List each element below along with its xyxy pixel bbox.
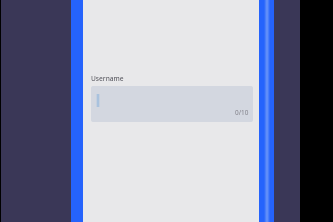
staticText: Username — [91, 74, 124, 83]
button[interactable]: Resize preview from right — [259, 0, 274, 222]
button[interactable]: Username text field — [91, 86, 253, 122]
staticText: 0/10 — [235, 108, 249, 117]
